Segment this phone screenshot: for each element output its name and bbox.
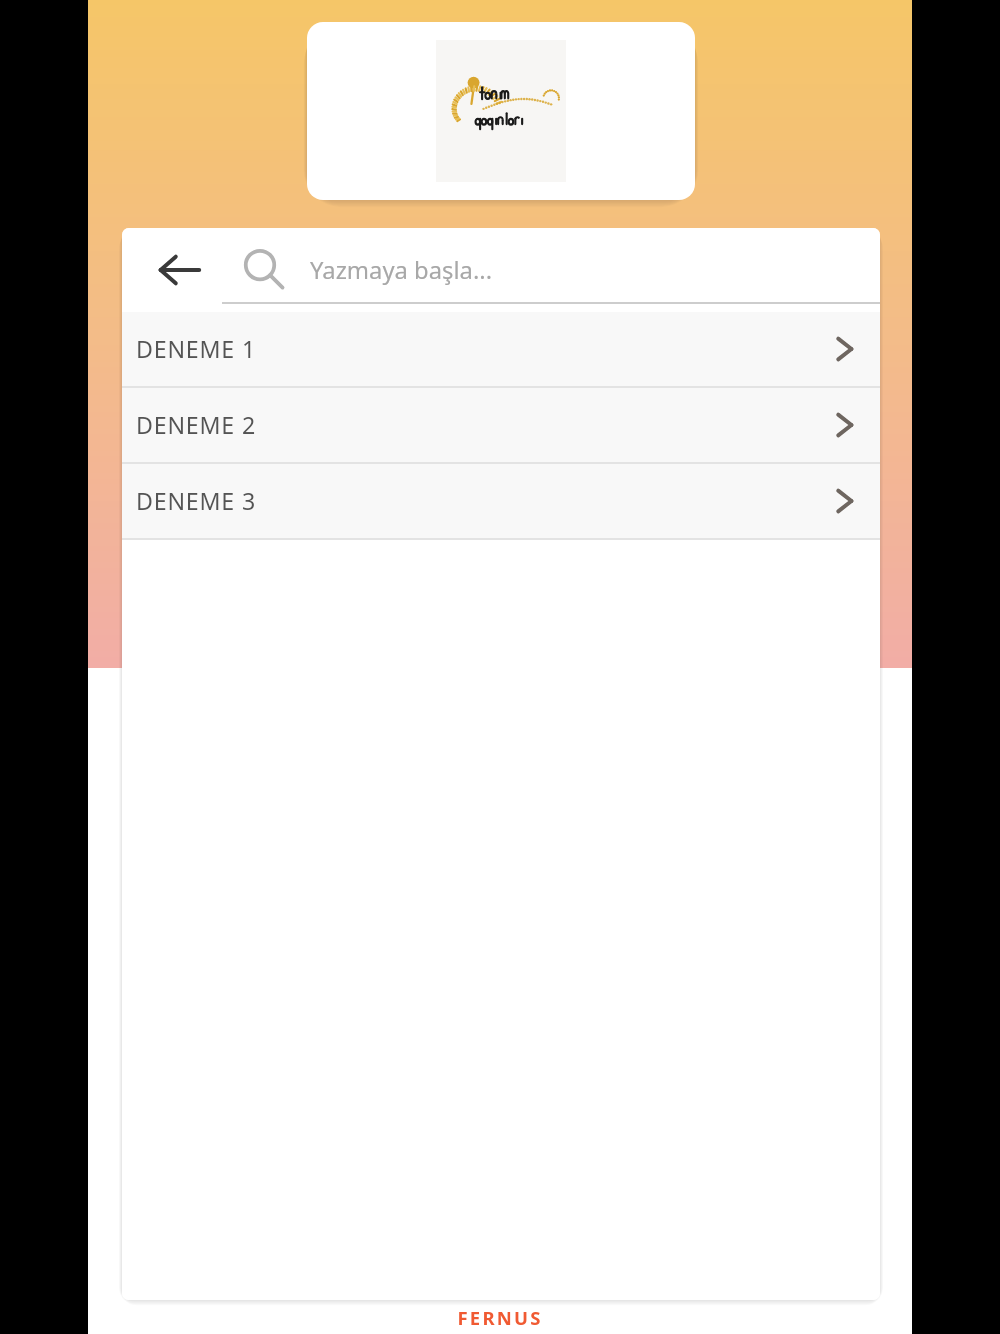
button[interactable]: Yazmaya başla...	[222, 228, 880, 312]
staticText: DENEME 1	[136, 333, 256, 365]
staticText: DENEME 3	[136, 485, 256, 517]
button[interactable]: Tanım Yayınları logo	[307, 22, 695, 200]
button[interactable]: DENEME 2	[122, 388, 880, 462]
staticText: FERNUS	[457, 1305, 543, 1330]
button[interactable]: DENEME 1	[122, 312, 880, 386]
button[interactable]: Back	[142, 228, 216, 312]
button[interactable]: DENEME 3	[122, 464, 880, 538]
staticText: DENEME 2	[136, 409, 256, 441]
staticText: Yazmaya başla...	[310, 254, 493, 286]
